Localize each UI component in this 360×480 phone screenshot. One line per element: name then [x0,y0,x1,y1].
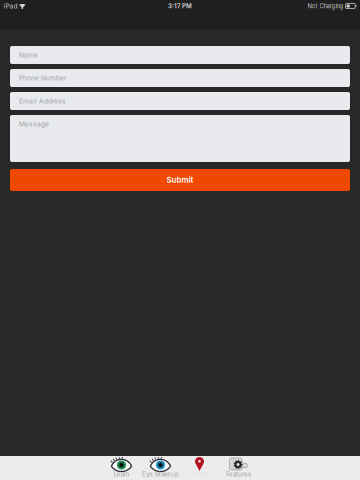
button[interactable]: Name [10,46,350,64]
button[interactable]: Message [10,115,350,162]
staticText: Message [19,120,49,128]
staticText: 3:17 PM [168,2,192,10]
button[interactable]: Locations [180,456,219,480]
staticText: Learn [113,470,129,478]
staticText: Locations [185,470,213,478]
button[interactable]: Submit [10,169,350,191]
button[interactable]: Phone Number [10,69,350,87]
staticText: Features [226,470,251,478]
staticText: iPad [3,2,17,10]
staticText: Name [19,51,38,59]
staticText: Email Address [19,97,66,105]
staticText: Submit [166,175,193,185]
staticText: Not Charging [308,2,344,10]
button[interactable]: Learn [102,456,141,480]
button[interactable]: Features [219,456,258,480]
staticText: Phone Number [19,74,67,82]
button[interactable]: Eye Makeup [141,456,180,480]
button[interactable]: Email Address [10,92,350,110]
staticText: Eye Makeup [142,470,179,478]
